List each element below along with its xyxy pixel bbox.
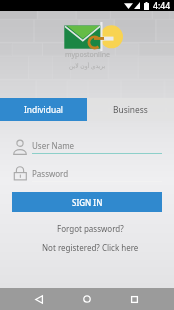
button[interactable]: Forgot password? [49,219,132,238]
staticText: Not registered? Click here [42,242,139,253]
staticText: Forgot password? [57,223,124,234]
staticText: Password [32,168,69,179]
button[interactable]: Not registered? Click here [34,238,147,257]
button[interactable]: Individual [0,98,87,121]
staticText: Individual [24,104,63,115]
button[interactable]: Recents [129,288,140,310]
staticText: بريدي أون لاين [69,62,106,70]
staticText: Business [113,104,148,115]
staticText: User Name [32,140,75,151]
button[interactable]: Business [87,98,174,121]
button[interactable]: Back [33,288,44,310]
button[interactable]: SIGN IN [12,192,162,212]
staticText: 4:44 [153,0,171,11]
staticText: mypostonline [65,50,110,60]
button[interactable]: Home [81,288,92,310]
staticText: SIGN IN [72,197,103,208]
